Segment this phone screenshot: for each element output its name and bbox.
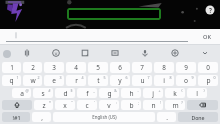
button[interactable]: k (165, 88, 185, 98)
button[interactable]: 4 (66, 62, 86, 73)
button[interactable]: , (32, 112, 51, 122)
button[interactable]: 6 (110, 62, 130, 73)
staticText: - (137, 88, 139, 93)
button[interactable]: o (176, 75, 196, 86)
button[interactable]: Done (178, 112, 218, 122)
staticText: k (173, 89, 177, 98)
staticText: 6 (125, 75, 128, 80)
button[interactable]: d (55, 88, 75, 98)
button[interactable]: 0 (198, 62, 218, 73)
button[interactable]: Settings (160, 45, 190, 61)
button[interactable]: h (121, 88, 141, 98)
staticText: i (163, 76, 165, 85)
button[interactable]: 8 (154, 62, 174, 73)
button[interactable]: . (157, 112, 176, 122)
button[interactable]: More (190, 45, 220, 61)
button[interactable] (6, 29, 188, 44)
button[interactable]: 7 (132, 62, 152, 73)
button[interactable]: !#1 (2, 112, 30, 122)
button[interactable]: OK (194, 29, 220, 44)
staticText: g (107, 89, 112, 98)
staticText: y (118, 76, 122, 85)
button[interactable]: z (34, 100, 53, 110)
button[interactable]: GIF (100, 45, 130, 61)
staticText: , (41, 113, 43, 122)
button[interactable]: Help (205, 5, 215, 15)
staticText: ? (181, 100, 183, 105)
staticText: c (85, 101, 89, 110)
button[interactable]: e (44, 75, 64, 86)
staticText: 3 (59, 75, 62, 80)
button[interactable]: 2 (23, 62, 42, 73)
button[interactable]: 3 (44, 62, 64, 73)
staticText: ) (203, 88, 205, 93)
staticText: ! (160, 100, 161, 105)
staticText: a (20, 89, 24, 98)
button[interactable]: Sticker (70, 45, 100, 61)
button[interactable]: n (143, 100, 163, 110)
staticText: ? (209, 6, 212, 14)
staticText: English (US) (92, 114, 117, 120)
button[interactable] (187, 100, 218, 110)
staticText: 1 (10, 63, 14, 72)
staticText: ; (138, 100, 139, 105)
staticText: 3 (52, 63, 56, 72)
button[interactable]: q (2, 75, 21, 86)
staticText: : (116, 100, 117, 105)
staticText: j (152, 89, 154, 98)
staticText: 4 (81, 75, 84, 80)
button[interactable] (67, 8, 161, 20)
staticText: p (206, 76, 211, 85)
staticText: 5 (96, 63, 100, 72)
staticText: 2 (31, 63, 35, 72)
staticText: 5 (103, 75, 106, 80)
staticText: w (30, 76, 36, 85)
staticText: 9 (184, 63, 188, 72)
staticText: # (48, 88, 51, 93)
staticText: 8 (162, 63, 166, 72)
staticText: $ (70, 88, 73, 93)
button[interactable]: f (77, 88, 97, 98)
button[interactable]: x (55, 100, 75, 110)
button[interactable]: v (99, 100, 119, 110)
button[interactable]: 1 (2, 62, 21, 73)
staticText: 1 (16, 75, 19, 80)
button[interactable]: s (33, 88, 53, 98)
button[interactable] (2, 100, 32, 110)
button[interactable]: Emoji (41, 45, 70, 61)
button[interactable]: m (165, 100, 185, 110)
button[interactable]: a (12, 88, 31, 98)
staticText: !#1 (12, 114, 21, 121)
staticText: u (140, 76, 145, 85)
staticText: 0 (206, 63, 210, 72)
button[interactable]: 5 (88, 62, 108, 73)
button[interactable]: g (99, 88, 119, 98)
button[interactable]: b (121, 100, 141, 110)
staticText: Done (191, 114, 205, 121)
button[interactable]: t (88, 75, 108, 86)
staticText: h (129, 89, 134, 98)
button[interactable]: u (132, 75, 152, 86)
button[interactable]: r (66, 75, 86, 86)
staticText: n (151, 101, 156, 110)
button[interactable]: i (154, 75, 174, 86)
button[interactable]: p (198, 75, 218, 86)
staticText: t (97, 76, 100, 85)
button[interactable]: English (US) (53, 112, 155, 122)
button[interactable]: w (23, 75, 42, 86)
staticText: 9 (191, 75, 194, 80)
staticText: ( (181, 88, 183, 93)
button[interactable]: j (143, 88, 163, 98)
staticText: e (52, 76, 56, 85)
button[interactable]: c (77, 100, 97, 110)
staticText: _ (93, 88, 95, 93)
staticText: " (71, 100, 73, 105)
staticText: @ (25, 88, 29, 93)
button[interactable]: y (110, 75, 130, 86)
staticText: . (166, 113, 168, 122)
button[interactable]: Google (1, 48, 12, 59)
button[interactable]: 9 (176, 62, 196, 73)
button[interactable]: l (187, 88, 207, 98)
button[interactable]: Voice input (130, 45, 160, 61)
button[interactable]: Clipboard (12, 45, 41, 61)
